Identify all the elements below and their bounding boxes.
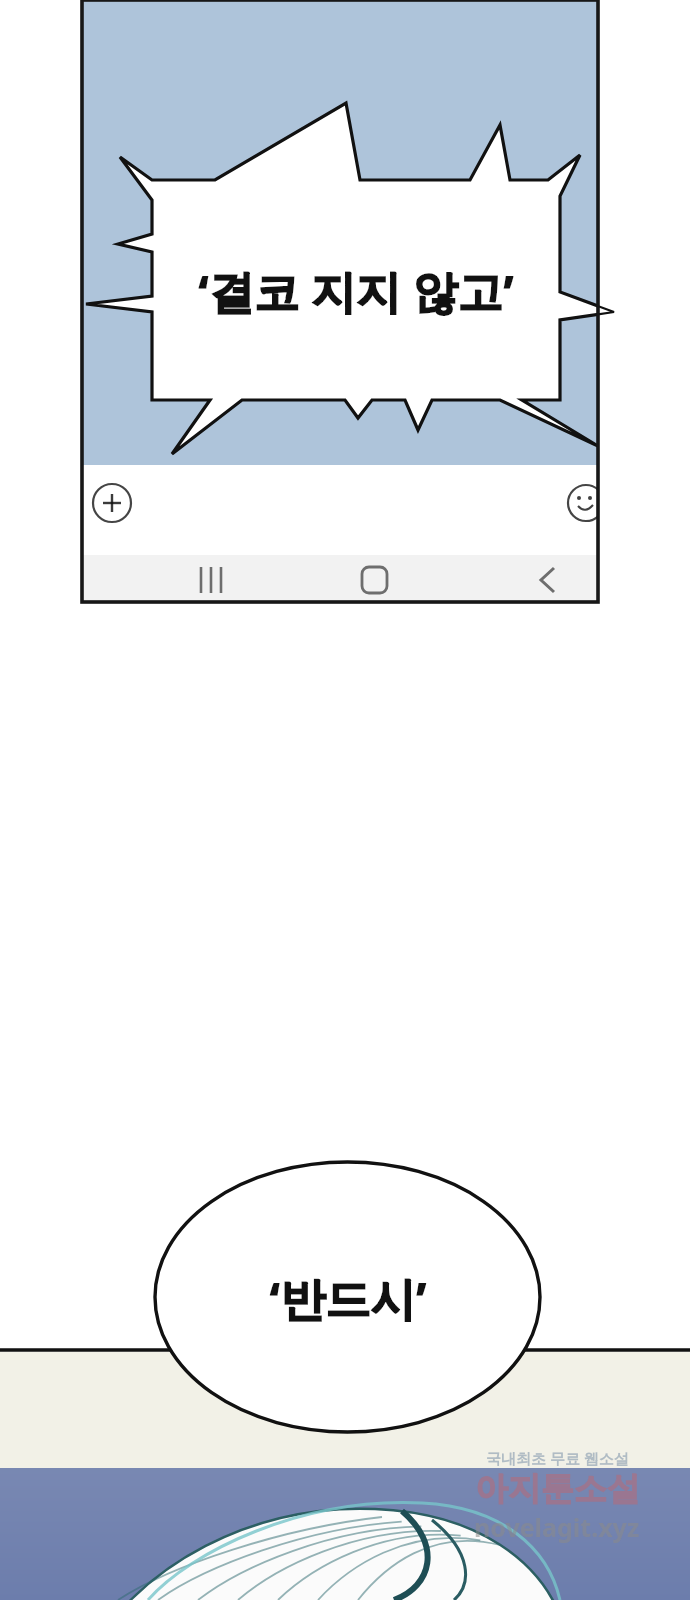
button[interactable]: Back [492,556,598,601]
staticText: ‘반드시’ [269,1267,427,1328]
button[interactable]: Emoji [558,474,598,532]
staticText: novelagit.xyz [474,1510,640,1544]
button[interactable]: Recents [155,556,267,601]
staticText: 국내최초 무료 웹소설 [486,1448,629,1468]
button[interactable]: Add attachment [88,474,138,532]
staticText: 아지툰소설 [475,1468,640,1510]
staticText: ‘결코 지지 않고’ [198,260,514,321]
button[interactable]: Home [318,556,430,601]
